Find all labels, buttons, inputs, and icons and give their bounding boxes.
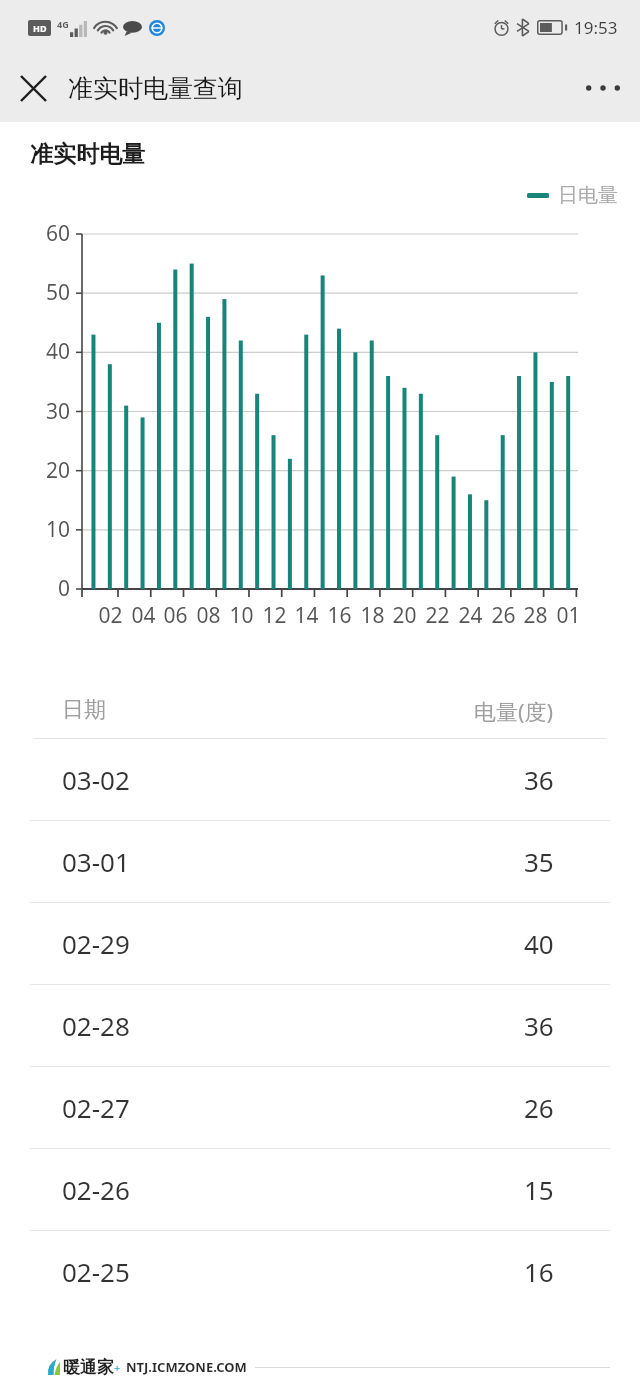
staticText: 24 xyxy=(458,601,483,630)
staticText: 04 xyxy=(131,601,156,630)
staticText: 12 xyxy=(262,601,287,630)
staticText: 02-27 xyxy=(62,1090,130,1125)
staticText: 15 xyxy=(524,1172,554,1207)
staticText: 08 xyxy=(196,601,221,630)
staticText: 36 xyxy=(524,762,554,797)
button[interactable]: 02-28 xyxy=(30,985,610,1066)
staticText: 02-26 xyxy=(62,1172,130,1207)
staticText: HD xyxy=(33,22,47,34)
staticText: 20 xyxy=(392,601,417,630)
staticText: 02 xyxy=(98,601,123,630)
staticText: 06 xyxy=(163,601,188,630)
staticText: 03-02 xyxy=(62,762,130,797)
button[interactable]: 02-25 xyxy=(30,1231,610,1312)
staticText: 01 xyxy=(556,601,581,630)
staticText: 02-29 xyxy=(62,926,130,961)
staticText: 40 xyxy=(45,337,70,366)
button[interactable]: Close xyxy=(6,61,60,115)
button[interactable]: 03-01 xyxy=(30,821,610,902)
staticText: 16 xyxy=(327,601,352,630)
staticText: 10 xyxy=(229,601,254,630)
staticText: 26 xyxy=(491,601,516,630)
staticText: 02-25 xyxy=(62,1254,130,1289)
staticText: 22 xyxy=(425,601,450,630)
staticText: 19:53 xyxy=(574,16,618,39)
staticText: 14 xyxy=(294,601,319,630)
staticText: 50 xyxy=(45,278,70,307)
staticText: 60 xyxy=(45,219,70,248)
staticText: 日期 xyxy=(62,696,106,724)
button[interactable]: 02-27 xyxy=(30,1067,610,1148)
button[interactable]: 02-26 xyxy=(30,1149,610,1230)
staticText: 35 xyxy=(524,844,554,879)
button[interactable]: More options xyxy=(576,61,630,115)
staticText: 18 xyxy=(360,601,385,630)
staticText: 30 xyxy=(45,397,70,426)
button[interactable]: 02-29 xyxy=(30,903,610,984)
staticText: NTJ.ICMZONE.COM xyxy=(126,1358,247,1376)
staticText: 36 xyxy=(524,1008,554,1043)
staticText: 02-28 xyxy=(62,1008,130,1043)
button[interactable]: 03-02 xyxy=(30,739,610,820)
staticText: 26 xyxy=(524,1090,554,1125)
staticText: 准实时电量 xyxy=(30,140,145,169)
staticText: 28 xyxy=(523,601,548,630)
staticText: 03-01 xyxy=(62,844,130,879)
staticText: 40 xyxy=(524,926,554,961)
staticText: 0 xyxy=(57,574,70,603)
staticText: 16 xyxy=(524,1254,554,1289)
staticText: 准实时电量查询 xyxy=(68,73,243,104)
staticText: 日电量 xyxy=(558,183,618,208)
staticText: + xyxy=(114,1360,121,1375)
staticText: 4G xyxy=(57,18,69,30)
staticText: 10 xyxy=(45,515,70,544)
staticText: 暖通家 xyxy=(63,1357,114,1378)
staticText: 20 xyxy=(45,456,70,485)
staticText: 电量(度) xyxy=(474,696,554,726)
